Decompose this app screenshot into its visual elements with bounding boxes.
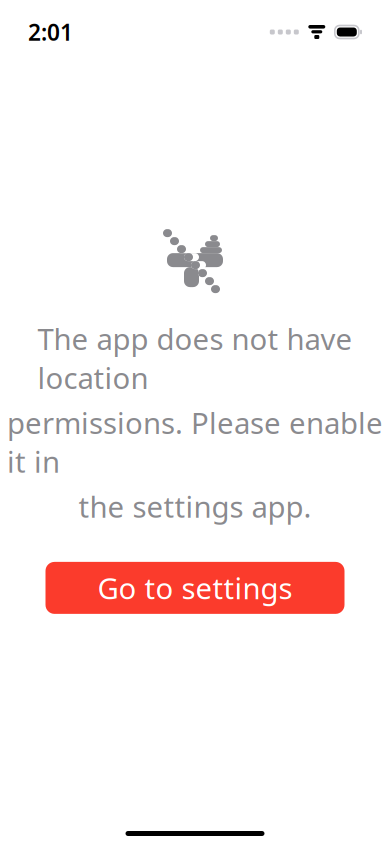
staticText: the settings app.: [78, 487, 311, 526]
button[interactable]: Go to settings: [45, 562, 344, 614]
staticText: Go to settings: [97, 568, 292, 607]
staticText: permissions. Please enable it in: [7, 403, 383, 481]
staticText: The app does not have location: [37, 319, 352, 397]
staticText: 2:01: [28, 17, 73, 47]
